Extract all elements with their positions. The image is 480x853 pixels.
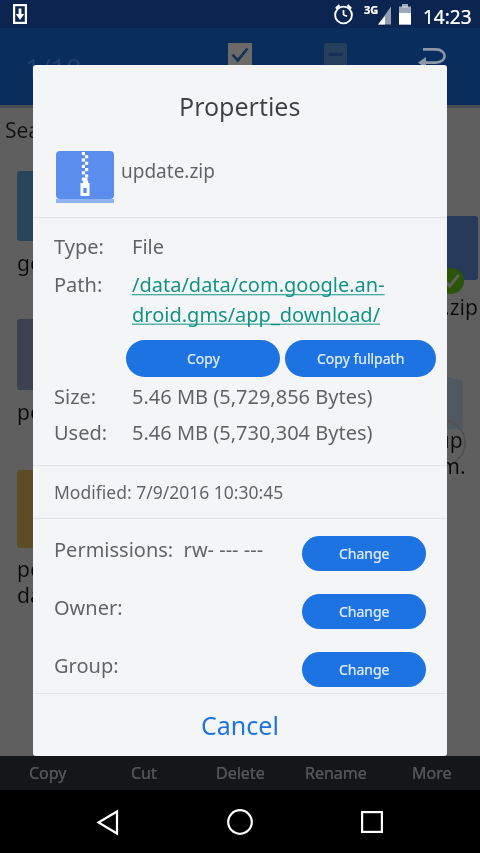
staticText: File (132, 233, 164, 260)
staticText: update.zip (374, 293, 478, 322)
staticText: Backup system. (390, 426, 466, 481)
button[interactable]: Copy (126, 340, 280, 377)
staticText: personal (17, 398, 104, 427)
button[interactable]: Recents (348, 798, 396, 846)
staticText: 5.46 MB (5,730,304 Bytes) (132, 419, 373, 446)
staticText: 14:23 (423, 4, 472, 30)
staticText: 3G (364, 2, 379, 17)
staticText: Group: (54, 652, 119, 679)
staticText: 5.46 MB (5,729,856 Bytes) (132, 383, 373, 410)
staticText: 1/18 (25, 50, 82, 87)
button[interactable]: Rename (288, 756, 384, 790)
staticText: Used: (54, 419, 132, 446)
staticText: Delete (216, 762, 265, 784)
staticText: Change (339, 660, 390, 679)
staticText: Change (339, 602, 390, 621)
staticText: Properties (179, 89, 301, 123)
button[interactable]: Select all (228, 43, 252, 67)
staticText: Owner: (54, 594, 123, 621)
staticText: Rename (305, 762, 367, 784)
staticText: Cancel (201, 708, 279, 742)
button[interactable]: Change (302, 536, 426, 571)
button[interactable]: Cancel (33, 694, 447, 756)
button[interactable]: Cut (96, 756, 192, 790)
staticText: Size: (54, 383, 132, 410)
staticText: Type: (54, 233, 132, 260)
staticText: Copy fullpath (317, 349, 405, 368)
staticText: Cut (131, 762, 157, 784)
button[interactable]: Change (302, 652, 426, 687)
staticText: Permissions: rw- --- --- (54, 536, 264, 563)
staticText: update.zip (121, 158, 215, 184)
button[interactable]: Undo (414, 40, 450, 70)
button[interactable]: Deselect (324, 43, 347, 66)
button[interactable]: Copy fullpath (285, 340, 436, 377)
button[interactable]: Home (216, 798, 264, 846)
button[interactable]: Copy (0, 756, 96, 790)
staticText: Modified: 7/9/2016 10:30:45 (54, 480, 284, 504)
button[interactable]: More (384, 756, 480, 790)
staticText: Copy (187, 349, 220, 368)
staticText: Copy (29, 762, 67, 784)
staticText: google (17, 249, 86, 278)
staticText: Path: (54, 271, 132, 298)
button[interactable]: Delete (192, 756, 288, 790)
staticText: pending data (17, 555, 99, 610)
staticText: Search (5, 116, 72, 145)
staticText: /data/data/com.google.an- droid.gms/app_… (132, 271, 385, 328)
button[interactable]: Change (302, 594, 426, 629)
button[interactable]: Back (84, 798, 132, 846)
staticText: More (412, 762, 452, 784)
staticText: Change (339, 544, 390, 563)
